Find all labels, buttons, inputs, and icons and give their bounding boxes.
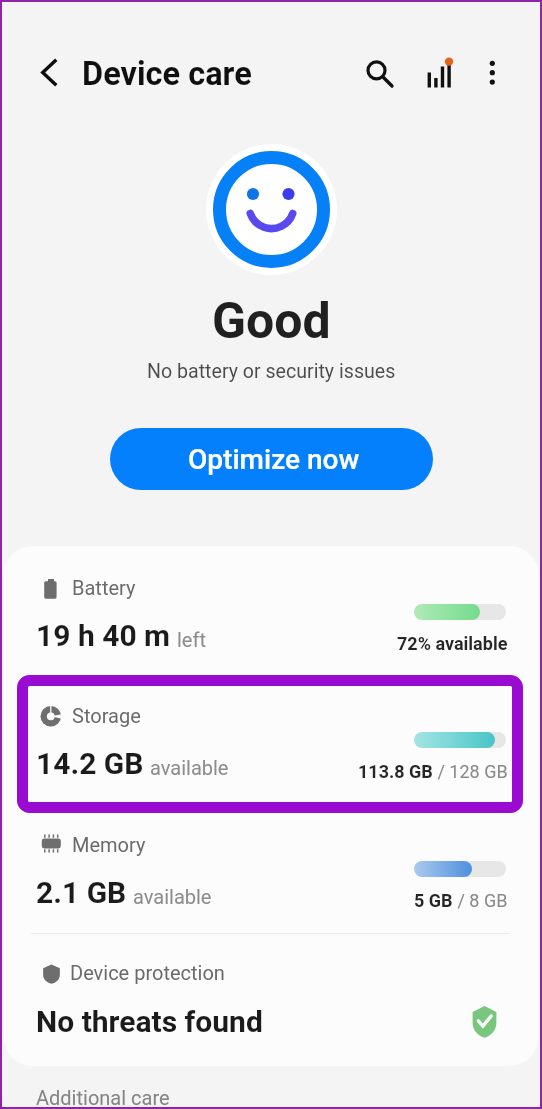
staticText: Additional care: [36, 1086, 170, 1109]
button[interactable]: More options: [470, 48, 515, 93]
staticText: 14.2 GB: [36, 746, 144, 781]
staticText: 5 GB: [414, 890, 453, 911]
button[interactable]: Battery: [4, 546, 538, 674]
staticText: 113.8 GB: [358, 761, 433, 782]
button[interactable]: Search: [353, 47, 400, 94]
staticText: No threats found: [36, 1004, 263, 1039]
button[interactable]: Back: [25, 48, 74, 97]
button[interactable]: Device care: [82, 53, 252, 95]
staticText: 2.1 GB: [36, 875, 127, 910]
staticText: Device care: [82, 55, 252, 93]
button[interactable]: Device protection: [4, 931, 538, 1065]
staticText: Optimize now: [188, 443, 360, 476]
staticText: Device protection: [70, 961, 225, 984]
button[interactable]: Diagnostics: [420, 50, 464, 94]
button[interactable]: Storage: [4, 674, 538, 802]
staticText: available: [133, 885, 212, 908]
staticText: Good: [212, 292, 331, 351]
button[interactable]: Memory: [4, 803, 538, 931]
staticText: 72% available: [397, 633, 508, 654]
staticText: Battery: [72, 576, 136, 599]
staticText: No battery or security issues: [147, 360, 396, 383]
staticText: Storage: [72, 704, 141, 727]
staticText: available: [150, 756, 229, 779]
staticText: / 8 GB: [453, 890, 508, 911]
staticText: 19 h 40 m: [36, 618, 171, 653]
staticText: / 128 GB: [433, 761, 508, 782]
staticText: left: [177, 628, 206, 651]
staticText: Memory: [72, 833, 146, 856]
button[interactable]: Optimize now: [110, 428, 433, 490]
